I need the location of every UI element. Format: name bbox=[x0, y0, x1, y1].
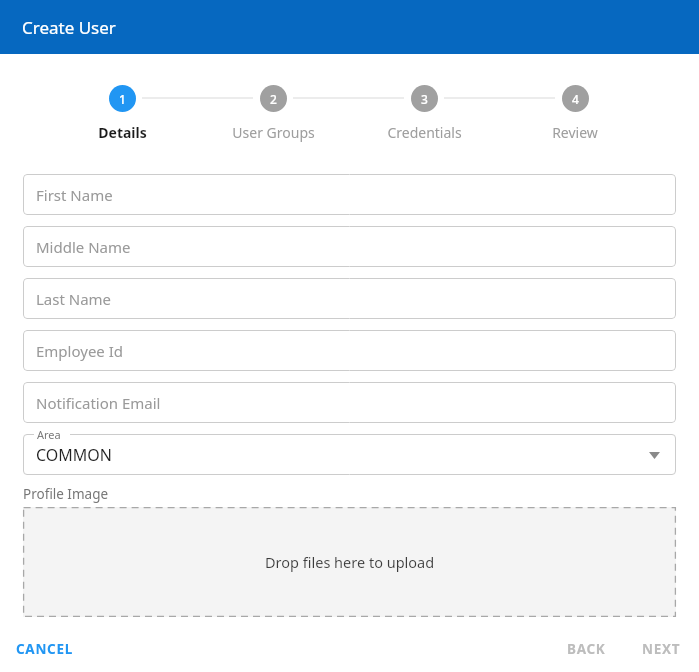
button[interactable]: Open Area dropdown bbox=[644, 445, 664, 465]
staticText: 4 bbox=[572, 91, 579, 107]
staticText: Profile Image bbox=[23, 485, 109, 503]
staticText: Credentials bbox=[387, 123, 462, 142]
button[interactable]: Notification Email bbox=[23, 382, 676, 423]
staticText: Details bbox=[98, 123, 147, 142]
staticText: 3 bbox=[421, 91, 428, 107]
button[interactable]: 2 bbox=[213, 85, 333, 142]
button[interactable]: CANCEL bbox=[8, 632, 81, 666]
button[interactable]: Last Name bbox=[23, 278, 676, 319]
button[interactable]: Area bbox=[23, 434, 676, 475]
staticText: 2 bbox=[270, 91, 277, 107]
button[interactable]: Drop files here to upload bbox=[23, 507, 676, 617]
staticText: User Groups bbox=[232, 123, 315, 142]
button[interactable]: NEXT bbox=[632, 632, 691, 666]
button[interactable]: Employee Id bbox=[23, 330, 676, 371]
button[interactable]: Middle Name bbox=[23, 226, 676, 267]
staticText: Area bbox=[37, 427, 61, 442]
staticText: Last Name bbox=[36, 289, 112, 309]
staticText: COMMON bbox=[36, 444, 112, 466]
button[interactable]: BACK bbox=[557, 632, 616, 666]
staticText: Notification Email bbox=[36, 393, 161, 413]
staticText: Create User bbox=[22, 16, 116, 39]
staticText: Drop files here to upload bbox=[265, 552, 435, 572]
staticText: CANCEL bbox=[16, 640, 73, 658]
staticText: Review bbox=[552, 123, 598, 142]
staticText: Employee Id bbox=[36, 341, 124, 361]
button[interactable]: 1 bbox=[62, 85, 182, 142]
staticText: First Name bbox=[36, 185, 113, 205]
staticText: BACK bbox=[567, 640, 606, 658]
button[interactable]: 3 bbox=[364, 85, 484, 142]
button[interactable]: 4 bbox=[515, 85, 635, 142]
staticText: 1 bbox=[119, 91, 126, 107]
staticText: Middle Name bbox=[36, 237, 131, 257]
button[interactable]: First Name bbox=[23, 174, 676, 215]
staticText: NEXT bbox=[642, 640, 681, 658]
